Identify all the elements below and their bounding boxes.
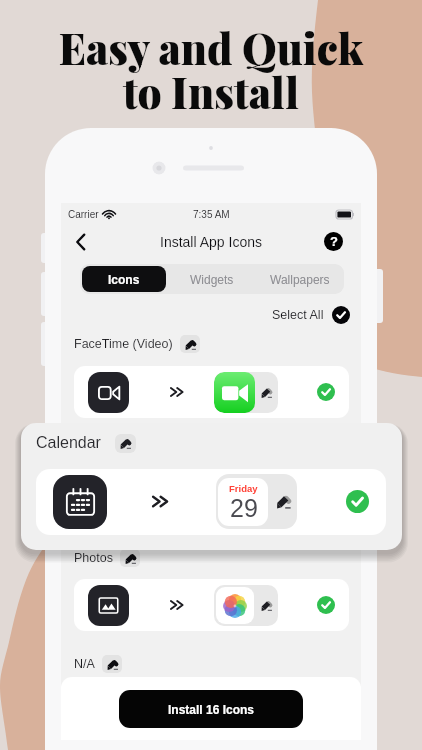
button[interactable]: Select All <box>61 305 350 325</box>
button[interactable]: Widgets <box>168 264 256 294</box>
button[interactable]: Help <box>324 232 343 251</box>
staticText: Select All <box>272 308 324 322</box>
staticText: FaceTime (Video) <box>74 337 173 351</box>
staticText: Easy and Quick to Install <box>0 20 422 119</box>
button[interactable]: N/A <box>74 655 122 673</box>
button[interactable]: Friday <box>36 469 386 535</box>
staticText: 29 <box>230 494 258 522</box>
button[interactable]: Friday <box>74 472 349 524</box>
staticText: Calendar <box>74 443 125 457</box>
button[interactable]: FaceTime (Video) <box>74 335 200 353</box>
button[interactable] <box>74 366 349 418</box>
other: Edit name <box>132 441 152 459</box>
staticText: Icons <box>108 273 140 286</box>
button[interactable]: Calendar <box>74 441 152 459</box>
button[interactable] <box>74 579 349 631</box>
staticText: Friday <box>224 486 246 494</box>
staticText: N/A <box>74 657 95 671</box>
staticText: Install App Icons <box>160 234 262 250</box>
button[interactable]: Wallpapers <box>256 264 344 294</box>
staticText: ? <box>330 234 338 249</box>
other: Edit name <box>115 434 136 453</box>
staticText: Carrier <box>68 209 99 220</box>
staticText: Calendar <box>36 434 101 452</box>
other: Edit name <box>120 549 140 567</box>
button[interactable]: Install 16 Icons <box>119 690 303 728</box>
staticText: 29 <box>226 494 245 513</box>
button[interactable]: Photos <box>74 549 140 567</box>
staticText: Friday <box>229 483 258 494</box>
other: Edit name <box>102 655 122 673</box>
staticText: 7:35 AM <box>193 209 230 220</box>
button[interactable]: Calendar <box>36 432 136 454</box>
staticText: Widgets <box>190 273 234 286</box>
button[interactable]: Icons <box>82 266 166 292</box>
button[interactable]: Back <box>66 228 94 256</box>
staticText: Wallpapers <box>270 273 330 286</box>
staticText: Photos <box>74 551 113 565</box>
other: Edit name <box>180 335 200 353</box>
staticText: Install 16 Icons <box>168 703 255 716</box>
